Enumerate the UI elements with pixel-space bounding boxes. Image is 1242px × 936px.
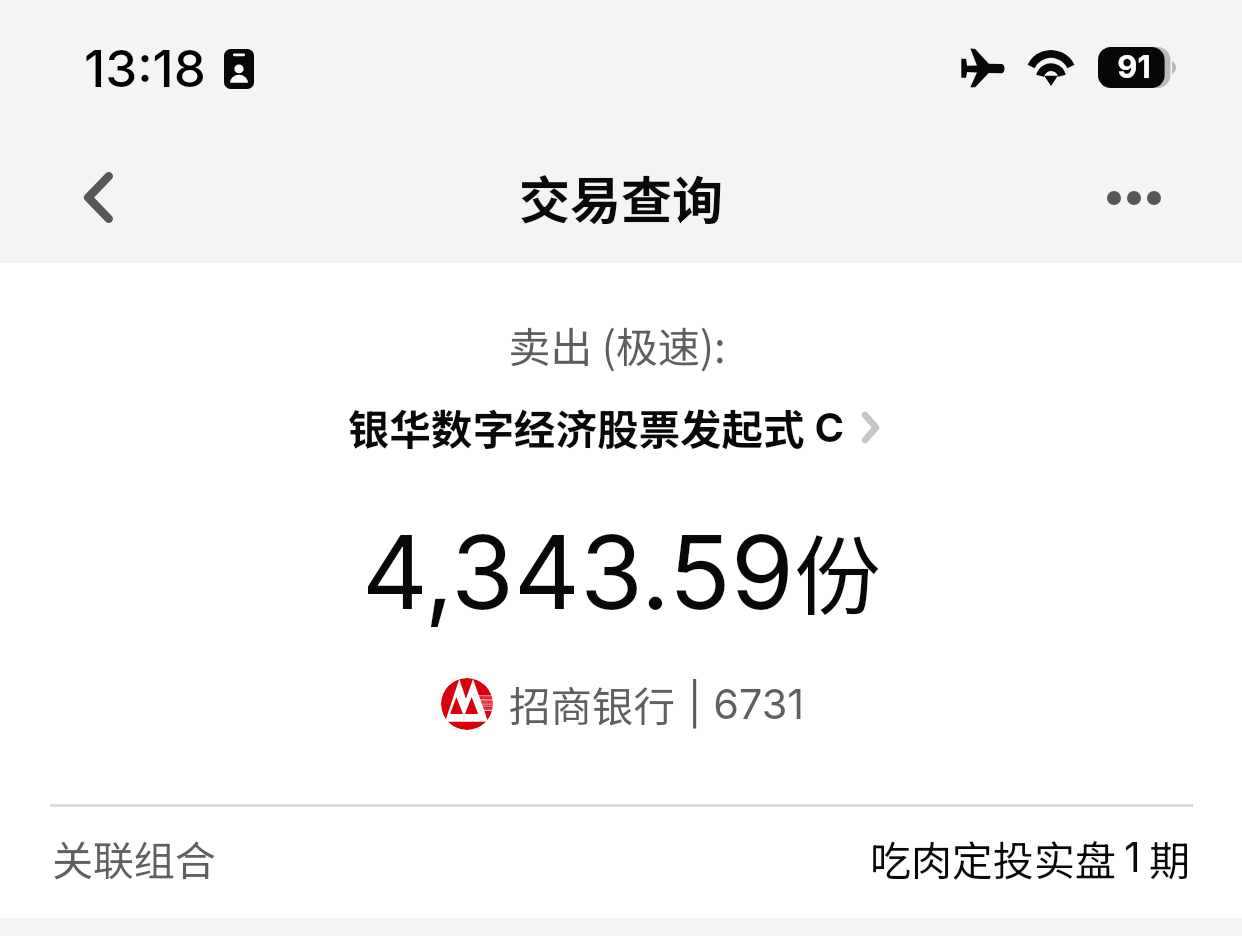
other: Airplane mode on xyxy=(961,48,1005,88)
other: Battery 91 percent xyxy=(1098,47,1178,88)
staticText: 卖出 (极速): xyxy=(508,314,726,375)
button[interactable]: Back xyxy=(55,154,141,240)
staticText: 1 xyxy=(1124,832,1141,882)
button[interactable]: 关联组合 xyxy=(0,801,1242,913)
other: Work profile xyxy=(224,49,254,89)
staticText: 份 xyxy=(794,507,881,633)
staticText: | 6731 xyxy=(676,679,805,729)
staticText: 交易查询 xyxy=(519,160,724,234)
button[interactable]: 银华数字经济股票发起式 xyxy=(344,393,883,461)
staticText: 13:18 xyxy=(84,38,206,100)
staticText: 91 xyxy=(1117,48,1151,86)
staticText: 4,343.59 xyxy=(362,510,794,633)
staticText: 吃肉定投实盘 xyxy=(870,828,1116,887)
staticText: C xyxy=(805,403,845,451)
staticText: 期 xyxy=(1149,828,1190,887)
other: Wi-Fi connected xyxy=(1027,50,1075,86)
button[interactable]: More options xyxy=(1091,155,1177,241)
staticText: 银华数字经济股票发起式 xyxy=(348,397,805,457)
staticText: 关联组合 xyxy=(52,828,216,887)
staticText: 招商银行 xyxy=(509,674,676,734)
